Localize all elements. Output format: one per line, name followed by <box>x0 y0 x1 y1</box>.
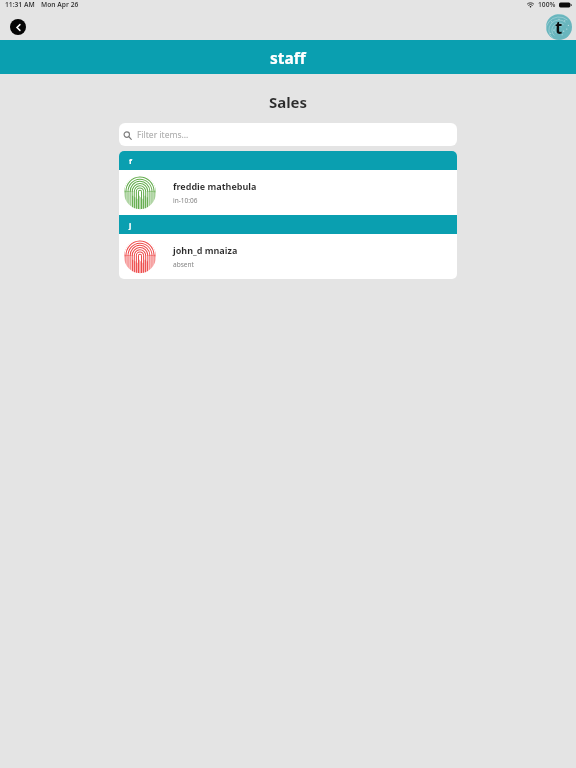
staticText: Mon Apr 26 <box>41 0 79 9</box>
button[interactable]: Back <box>10 19 26 35</box>
staticText: Sales <box>0 92 576 112</box>
staticText: freddie mathebula <box>173 180 257 192</box>
staticText: absent <box>173 260 194 269</box>
staticText: in-10:06 <box>173 196 198 205</box>
button[interactable]: freddie mathebula <box>119 170 457 215</box>
staticText: f <box>129 156 132 166</box>
button[interactable]: john_d mnaiza <box>119 234 457 279</box>
staticText: t <box>555 16 563 39</box>
button[interactable]: Filter items... <box>119 123 457 146</box>
staticText: 11:31 AM <box>5 0 35 9</box>
staticText: Filter items... <box>137 129 189 141</box>
staticText: staff <box>270 47 306 68</box>
button[interactable]: Profile <box>546 14 572 40</box>
staticText: 100% <box>538 0 556 9</box>
staticText: j <box>129 220 132 230</box>
staticText: john_d mnaiza <box>173 244 238 256</box>
